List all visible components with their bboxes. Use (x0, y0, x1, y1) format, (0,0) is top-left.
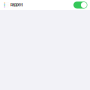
staticText: Rappels (10, 3, 23, 7)
button[interactable]: Rappels (0, 0, 90, 10)
